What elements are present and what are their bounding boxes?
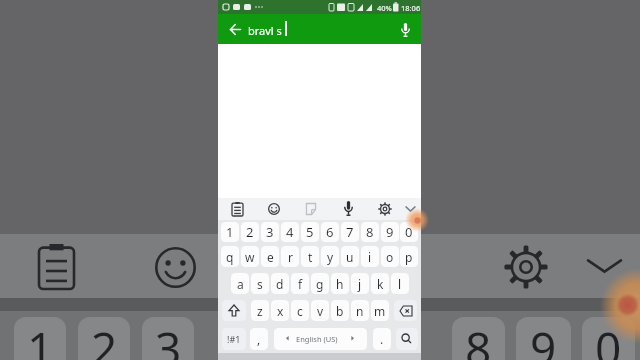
button[interactable]: v	[311, 300, 329, 321]
button[interactable]: 3	[261, 222, 279, 242]
staticText: k	[377, 276, 384, 292]
button[interactable]	[222, 300, 246, 321]
button[interactable]: .	[373, 328, 391, 350]
button[interactable]: 7	[341, 222, 359, 242]
staticText: d	[276, 276, 284, 292]
button[interactable]: q	[221, 246, 239, 267]
button[interactable]: o	[381, 246, 399, 267]
button[interactable]: 8	[361, 222, 379, 242]
staticText: u	[346, 249, 354, 265]
staticText: 3	[155, 317, 182, 360]
button[interactable]: 2	[78, 317, 130, 360]
button[interactable]	[274, 328, 367, 350]
staticText: 0	[595, 317, 622, 360]
button[interactable]: t	[301, 246, 319, 267]
staticText: .	[380, 331, 384, 347]
button[interactable]: 1	[14, 317, 66, 360]
staticText: y	[327, 249, 334, 265]
staticText: r	[288, 249, 293, 265]
staticText: m	[374, 303, 386, 319]
button[interactable]: 9	[516, 317, 571, 360]
staticText: 18:06	[401, 3, 421, 13]
staticText: i	[368, 249, 372, 265]
staticText: o	[386, 249, 394, 265]
button[interactable]: g	[311, 273, 329, 294]
staticText: e	[267, 249, 274, 265]
button[interactable]: c	[291, 300, 309, 321]
staticText: 1	[27, 317, 54, 360]
button[interactable]: 1	[221, 222, 239, 242]
staticText: z	[257, 303, 263, 319]
button[interactable]: m	[371, 300, 389, 321]
button[interactable]: w	[241, 246, 259, 267]
button[interactable]: p	[400, 246, 418, 267]
staticText: p	[405, 249, 413, 265]
staticText: n	[356, 303, 364, 319]
button[interactable]: h	[331, 273, 349, 294]
staticText: a	[237, 276, 244, 292]
staticText: l	[398, 276, 402, 292]
button[interactable]: i	[361, 246, 379, 267]
button[interactable]: 0	[400, 222, 418, 242]
button[interactable]: 5	[301, 222, 319, 242]
staticText: q	[226, 249, 234, 265]
button[interactable]: 0	[582, 317, 635, 360]
button[interactable]: bravl s	[218, 14, 421, 44]
staticText: bravl s	[248, 23, 282, 38]
button[interactable]: r	[281, 246, 299, 267]
button[interactable]: j	[351, 273, 369, 294]
button[interactable]: 2	[241, 222, 259, 242]
staticText: 2	[246, 223, 254, 241]
staticText: 8	[366, 223, 374, 241]
staticText: 4	[286, 223, 294, 241]
staticText: s	[257, 276, 263, 292]
staticText: ,	[257, 331, 261, 347]
button[interactable]: k	[371, 273, 389, 294]
staticText: x	[277, 303, 284, 319]
staticText: g	[316, 276, 324, 292]
staticText: 40%	[377, 3, 392, 13]
staticText: b	[336, 303, 344, 319]
staticText: t	[308, 249, 313, 265]
staticText: h	[336, 276, 344, 292]
button[interactable]: e	[261, 246, 279, 267]
staticText: w	[245, 249, 255, 265]
button[interactable]: 9	[381, 222, 399, 242]
staticText: f	[298, 276, 303, 292]
button[interactable]: u	[341, 246, 359, 267]
button[interactable]: s	[251, 273, 269, 294]
staticText: 7	[346, 223, 354, 241]
staticText: 3	[266, 223, 274, 241]
button[interactable]: z	[251, 300, 269, 321]
staticText: 9	[530, 317, 557, 360]
staticText: !#1	[227, 333, 241, 345]
button[interactable]	[218, 198, 421, 220]
button[interactable]: a	[231, 273, 249, 294]
staticText: 1	[226, 223, 234, 241]
button[interactable]: d	[271, 273, 289, 294]
button[interactable]: y	[321, 246, 339, 267]
staticText: 9	[386, 223, 394, 241]
button[interactable]: !#1	[222, 328, 246, 350]
staticText: 6	[326, 223, 334, 241]
staticText: 2	[91, 317, 118, 360]
button[interactable]: l	[391, 273, 409, 294]
button[interactable]: b	[331, 300, 349, 321]
staticText: v	[317, 303, 324, 319]
button[interactable]: 8	[452, 317, 505, 360]
button[interactable]: x	[271, 300, 289, 321]
button[interactable]	[394, 300, 417, 321]
button[interactable]: 6	[321, 222, 339, 242]
button[interactable]: 4	[281, 222, 299, 242]
staticText: English (US)	[296, 334, 338, 344]
button[interactable]: f	[291, 273, 309, 294]
button[interactable]: ,	[250, 328, 268, 350]
button[interactable]: n	[351, 300, 369, 321]
staticText: c	[297, 303, 303, 319]
staticText: 8	[465, 317, 492, 360]
staticText: 5	[306, 223, 314, 241]
button[interactable]	[396, 328, 418, 350]
staticText: 0	[405, 223, 413, 241]
button[interactable]: 3	[142, 317, 194, 360]
staticText: j	[358, 276, 362, 292]
